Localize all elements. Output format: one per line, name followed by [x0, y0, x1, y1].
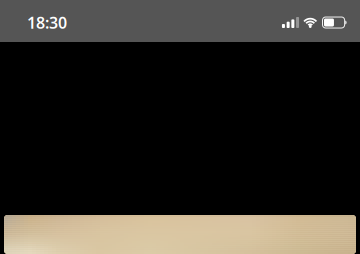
staticText: 18:30	[27, 12, 67, 33]
